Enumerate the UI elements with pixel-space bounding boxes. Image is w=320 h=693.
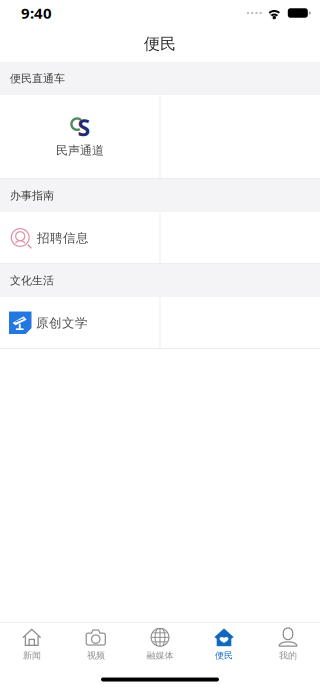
staticText: 便民	[144, 34, 176, 54]
staticText: 便民	[215, 650, 233, 661]
staticText: 办事指南	[10, 189, 54, 202]
staticText: 招聘信息	[37, 230, 89, 246]
staticText: 我的	[279, 650, 297, 661]
button[interactable]: 原创文学	[0, 297, 160, 349]
staticText: 9:40	[21, 3, 52, 23]
staticText: 民声通道	[56, 143, 104, 158]
staticText: 视频	[87, 650, 105, 661]
button[interactable]: 便民	[192, 624, 256, 664]
staticText: 文化生活	[10, 274, 54, 287]
staticText: 原创文学	[36, 315, 88, 331]
button[interactable]: S	[0, 95, 160, 179]
staticText: S	[77, 112, 90, 143]
button[interactable]: 融媒体	[128, 624, 192, 664]
button[interactable]: 招聘信息	[0, 212, 160, 264]
staticText: 新闻	[23, 650, 41, 661]
button[interactable]: 新闻	[0, 624, 64, 664]
button[interactable]: 我的	[256, 624, 320, 664]
staticText: 融媒体	[146, 650, 173, 661]
button[interactable]: 视频	[64, 624, 128, 664]
staticText: 便民直通车	[10, 72, 65, 85]
